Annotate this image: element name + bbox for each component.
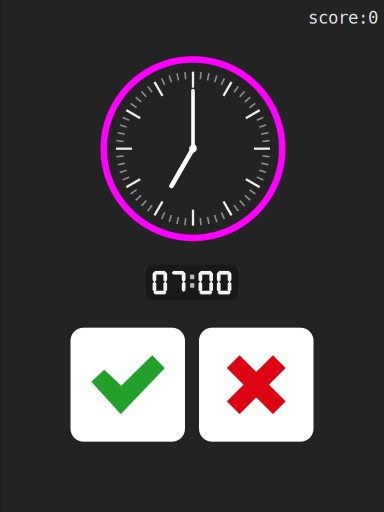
staticText: score:0 — [308, 8, 378, 28]
button[interactable]: Wrong — [199, 328, 313, 442]
button[interactable]: Correct — [70, 328, 185, 442]
